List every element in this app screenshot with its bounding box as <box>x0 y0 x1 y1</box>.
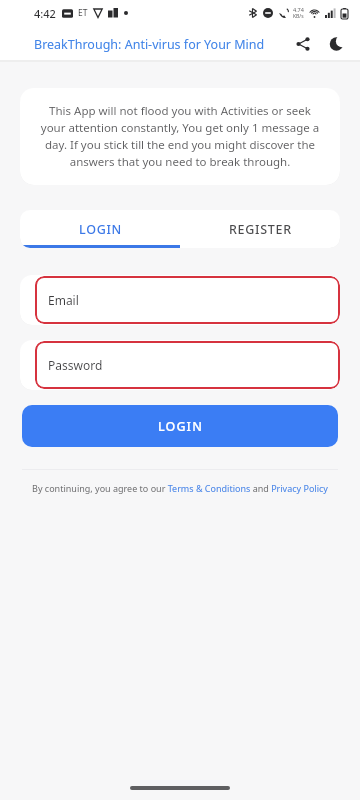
staticText: ET <box>78 7 88 19</box>
button[interactable]: LOGIN <box>22 405 338 447</box>
staticText: LOGIN <box>79 221 122 238</box>
button[interactable]: Toggle dark mode <box>320 27 354 61</box>
button[interactable]: Password <box>35 341 340 389</box>
staticText: Email <box>48 292 79 308</box>
staticText: LOGIN <box>158 418 203 435</box>
button[interactable]: Email <box>35 276 340 324</box>
staticText: Password <box>48 357 103 373</box>
staticText: 4:42 <box>34 6 56 21</box>
button[interactable]: LOGIN <box>20 210 180 248</box>
staticText: REGISTER <box>229 221 292 238</box>
staticText: BreakThrough: Anti-virus for Your Mind <box>34 36 265 53</box>
staticText: KB/s <box>293 13 304 20</box>
staticText: 4.74 <box>293 6 304 13</box>
button[interactable]: Share <box>286 27 320 61</box>
staticText: By continuing, you agree to our Terms & … <box>14 482 346 494</box>
button[interactable]: REGISTER <box>180 210 340 248</box>
staticText: This App will not flood you with Activit… <box>37 103 323 170</box>
